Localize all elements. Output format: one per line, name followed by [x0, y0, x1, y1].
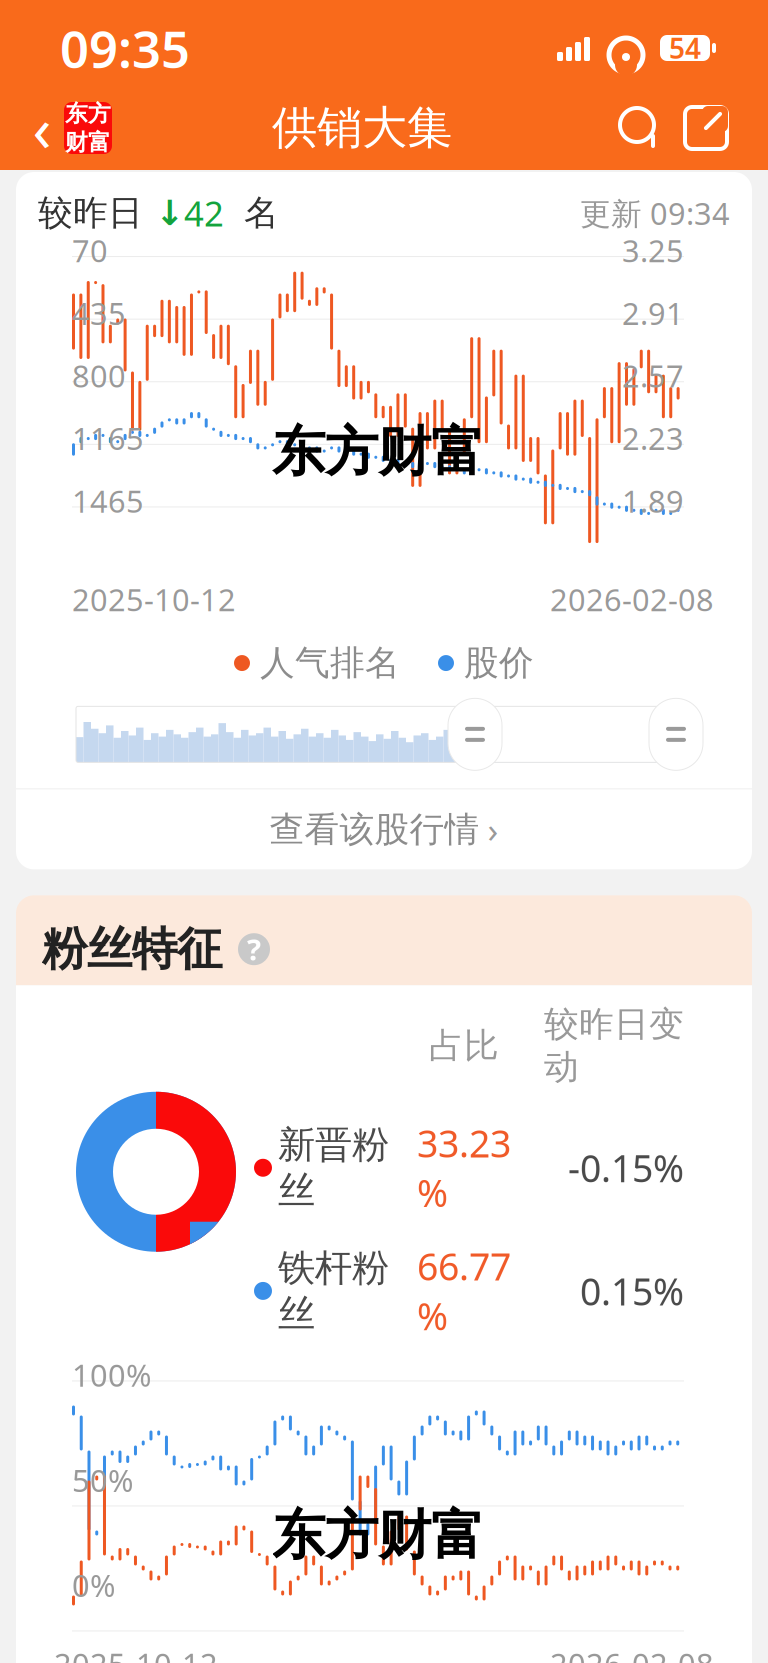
- staticText: 2026-02-08: [550, 1643, 714, 1663]
- button[interactable]: 调整时间范围: [448, 698, 502, 770]
- staticText: 54: [669, 29, 701, 67]
- staticText: 3.25: [622, 230, 684, 271]
- staticText: 09:35: [60, 14, 190, 82]
- staticText: 较昨日变动: [544, 1003, 684, 1088]
- staticText: 股价: [464, 642, 534, 684]
- staticText: 66.77%: [417, 1241, 511, 1340]
- button[interactable]: 说明: [236, 931, 272, 967]
- staticText: 较昨日: [38, 192, 143, 234]
- staticText: 0.15%: [580, 1266, 684, 1316]
- staticText: 占比: [429, 1024, 499, 1067]
- button[interactable]: 调整时间范围: [649, 698, 703, 770]
- staticText: 1.89: [622, 480, 684, 521]
- staticText: 财富: [65, 128, 111, 156]
- staticText: 70: [72, 230, 108, 271]
- button[interactable]: 返回: [20, 100, 64, 156]
- staticText: ?: [247, 930, 261, 969]
- staticText: -0.15%: [568, 1143, 684, 1193]
- staticText: 东方: [65, 100, 111, 127]
- button[interactable]: 东方财富: [64, 102, 112, 154]
- staticText: 2025-10-12: [72, 579, 236, 620]
- staticText: 供销大集: [272, 100, 452, 156]
- staticText: 50%: [72, 1460, 133, 1500]
- button[interactable]: 分享: [668, 100, 734, 156]
- staticText: 0%: [72, 1565, 115, 1605]
- staticText: ‹: [32, 87, 51, 169]
- staticText: ↓: [143, 193, 184, 233]
- staticText: 2025-10-12: [54, 1643, 218, 1663]
- button[interactable]: 查看该股行情: [16, 789, 752, 869]
- staticText: 1165: [72, 418, 144, 458]
- button[interactable]: 搜索: [612, 100, 668, 156]
- staticText: 东方财富: [272, 419, 484, 485]
- staticText: ›: [487, 806, 498, 852]
- staticText: 42: [184, 190, 224, 236]
- staticText: 人气排名: [260, 642, 400, 684]
- staticText: 2.23: [622, 418, 684, 458]
- staticText: 800: [72, 355, 126, 396]
- staticText: 铁杆粉丝: [278, 1245, 389, 1337]
- staticText: 1465: [72, 480, 144, 521]
- staticText: 100%: [72, 1354, 151, 1395]
- staticText: 查看该股行情: [269, 808, 479, 851]
- staticText: 435: [72, 293, 126, 333]
- staticText: 名: [224, 192, 279, 234]
- staticText: 2.57: [622, 355, 684, 396]
- staticText: 33.23%: [417, 1118, 511, 1217]
- staticText: 新晋粉丝: [278, 1122, 389, 1214]
- staticText: 粉丝特征: [42, 921, 222, 977]
- staticText: 东方财富: [272, 1503, 484, 1568]
- staticText: 更新 09:34: [580, 193, 730, 233]
- staticText: 2.91: [622, 293, 684, 333]
- staticText: 2026-02-08: [550, 579, 714, 620]
